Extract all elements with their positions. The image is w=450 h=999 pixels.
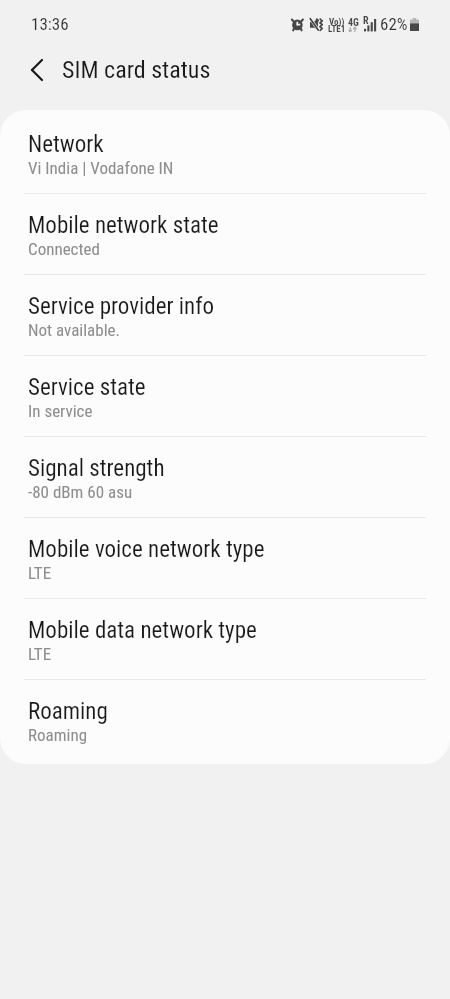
button[interactable]: Roaming	[0, 680, 450, 761]
staticText: LTE1	[328, 24, 346, 35]
button[interactable]: Mobile voice network type	[0, 518, 450, 598]
staticText: Service state	[28, 374, 146, 401]
staticText: Connected	[28, 239, 100, 259]
staticText: SIM card status	[62, 56, 211, 84]
button[interactable]: Mobile network state	[0, 194, 450, 274]
staticText: Service provider info	[28, 293, 215, 320]
button[interactable]: Service state	[0, 356, 450, 436]
staticText: Mobile network state	[28, 212, 219, 239]
staticText: 13:36	[31, 14, 69, 34]
staticText: LTE	[28, 644, 52, 664]
staticText: R	[363, 15, 369, 27]
button[interactable]: Navigate up	[20, 53, 54, 87]
staticText: Vo))	[329, 17, 345, 28]
staticText: Vi India | Vodafone IN	[28, 158, 174, 178]
staticText: -80 dBm 60 asu	[28, 482, 133, 502]
staticText: In service	[28, 401, 93, 421]
staticText: Roaming	[28, 725, 88, 745]
staticText: Network	[28, 131, 104, 158]
staticText: Not available.	[28, 320, 120, 340]
button[interactable]: Network	[0, 113, 450, 193]
button[interactable]: Service provider info	[0, 275, 450, 355]
button[interactable]: Mobile data network type	[0, 599, 450, 679]
staticText: Mobile data network type	[28, 617, 257, 644]
staticText: Signal strength	[28, 455, 165, 482]
staticText: LTE	[28, 563, 52, 583]
staticText: 4G	[348, 17, 359, 29]
button[interactable]: Signal strength	[0, 437, 450, 517]
staticText: Mobile voice network type	[28, 536, 265, 563]
staticText: 62%	[380, 14, 408, 34]
staticText: Roaming	[28, 698, 108, 725]
